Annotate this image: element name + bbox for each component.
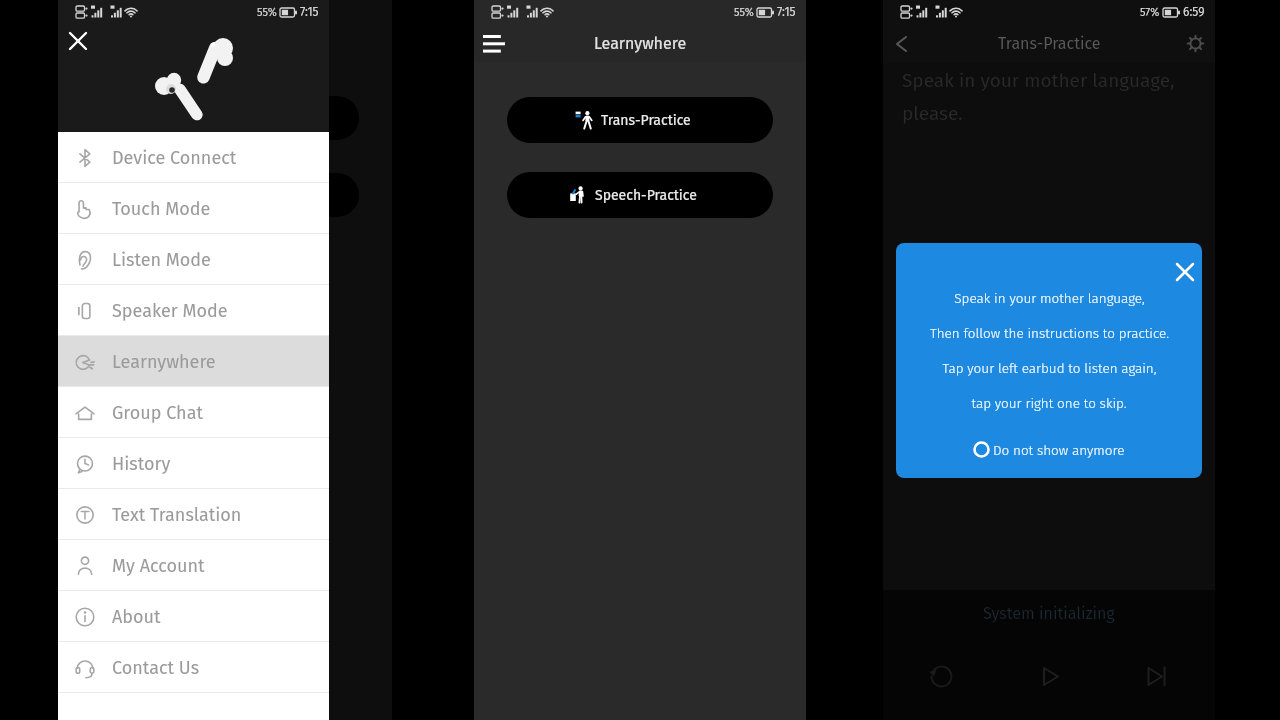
staticText: About [112,606,161,628]
staticText: System initializing [983,604,1115,623]
button[interactable]: My Account [58,540,329,591]
staticText: Tap your left earbud to listen again, [942,360,1157,376]
staticText: Text Translation [112,504,242,526]
button[interactable]: Replay [920,655,962,697]
staticText: 6:59 [1183,5,1205,19]
button[interactable]: Text Translation [58,489,329,540]
button[interactable]: Next [1136,655,1178,697]
staticText: Listen Mode [112,249,211,271]
staticText: Learnywhere [594,34,687,53]
button[interactable]: About [58,591,329,642]
button[interactable]: Learnywhere [58,336,329,387]
staticText: tap your right one to skip. [971,395,1127,411]
button[interactable]: Group Chat [58,387,329,438]
button[interactable]: Touch Mode [58,183,329,234]
staticText: Learnywhere [112,351,216,373]
button[interactable]: Do not show anymore [973,441,1125,458]
staticText: Trans-Practice [601,112,691,129]
button[interactable]: Settings [1175,24,1215,63]
staticText: My Account [112,555,205,577]
staticText: History [112,453,171,475]
staticText: Speech-Practice [595,187,697,204]
button[interactable]: Close dialog [1168,255,1202,289]
button[interactable]: Speaker Mode [58,285,329,336]
staticText: 55% [734,6,754,19]
staticText: Group Chat [112,402,203,424]
staticText: 7:15 [777,5,796,19]
button[interactable]: Contact Us [58,642,329,693]
staticText: 55% [257,6,277,19]
button[interactable]: Menu [474,24,514,63]
staticText: Device Connect [112,147,237,169]
button[interactable]: Speech-Practice [507,172,773,218]
staticText: Touch Mode [112,198,211,220]
button[interactable]: Listen Mode [58,234,329,285]
staticText: Speak in your mother language, please. [902,69,1207,125]
staticText: 57% [1140,6,1160,19]
staticText: Do not show anymore [993,442,1125,458]
button[interactable]: Close [60,23,96,59]
staticText: Speaker Mode [112,300,228,322]
button[interactable]: Play [1028,655,1070,697]
staticText: Trans-Practice [998,34,1101,53]
button[interactable]: Device Connect [58,132,329,183]
staticText: Contact Us [112,657,200,679]
button[interactable]: Trans-Practice [507,97,773,143]
staticText: 7:15 [300,5,319,19]
staticText: Then follow the instructions to practice… [930,325,1169,341]
button[interactable]: History [58,438,329,489]
button[interactable]: Back [884,24,918,63]
staticText: Speak in your mother language, [954,290,1145,306]
